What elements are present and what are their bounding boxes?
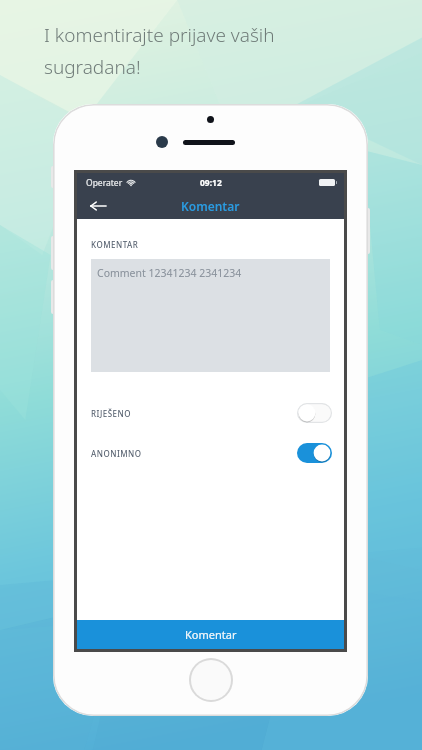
staticText: Comment 12341234 2341234	[97, 266, 242, 280]
staticText: sugradana!	[44, 54, 141, 80]
button[interactable]: RIJEŠENO	[77, 399, 344, 427]
staticText: 09:12	[200, 177, 222, 189]
button[interactable]: ANONIMNO	[77, 439, 344, 467]
staticText: RIJEŠENO	[91, 408, 131, 419]
button[interactable]: Comment 12341234 2341234	[91, 259, 330, 372]
staticText: ANONIMNO	[91, 448, 142, 459]
staticText: Komentar	[181, 198, 240, 214]
staticText: Komentar	[185, 627, 237, 642]
staticText: I komentirajte prijave vaših	[44, 22, 275, 48]
staticText: Operater	[86, 177, 123, 189]
button[interactable]: Komentar	[77, 620, 344, 649]
button[interactable]: Back	[77, 192, 119, 219]
staticText: KOMENTAR	[91, 239, 139, 250]
